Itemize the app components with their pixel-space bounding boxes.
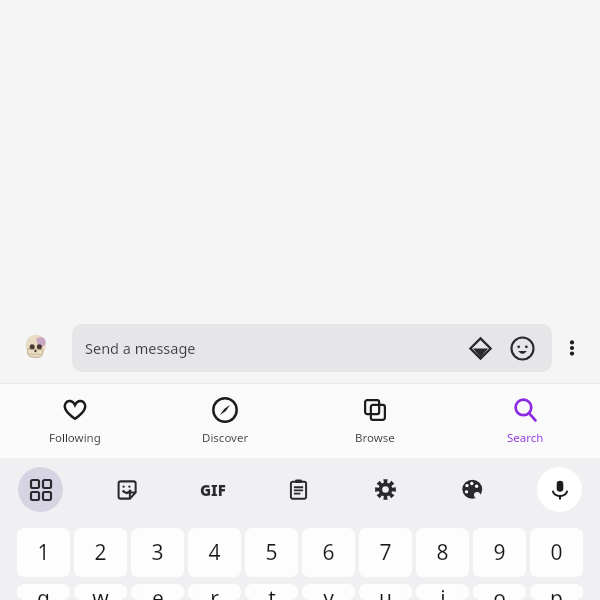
button[interactable]: o bbox=[473, 584, 526, 600]
button[interactable]: 8 bbox=[416, 528, 469, 577]
button[interactable]: 5 bbox=[245, 528, 298, 577]
button[interactable]: Stickers bbox=[104, 467, 149, 512]
staticText: 6 bbox=[322, 538, 335, 567]
staticText: e bbox=[152, 584, 164, 600]
staticText: p bbox=[550, 584, 563, 600]
button[interactable]: 7 bbox=[359, 528, 412, 577]
staticText: r bbox=[210, 584, 219, 600]
button[interactable]: Themes bbox=[450, 467, 495, 512]
button[interactable]: t bbox=[245, 584, 298, 600]
button[interactable]: w bbox=[74, 584, 127, 600]
staticText: 0 bbox=[550, 538, 563, 567]
staticText: 3 bbox=[151, 538, 164, 567]
staticText: 8 bbox=[436, 538, 449, 567]
staticText: GIF bbox=[200, 480, 226, 500]
staticText: Browse bbox=[355, 430, 395, 446]
staticText: u bbox=[379, 584, 392, 600]
staticText: 1 bbox=[37, 538, 50, 567]
button[interactable]: u bbox=[359, 584, 412, 600]
button[interactable]: Search bbox=[450, 384, 600, 458]
button[interactable]: Clipboard bbox=[276, 467, 321, 512]
button[interactable]: e bbox=[131, 584, 184, 600]
button[interactable]: 2 bbox=[74, 528, 127, 577]
staticText: Discover bbox=[202, 430, 249, 446]
button[interactable]: Send a message bbox=[72, 324, 552, 372]
button[interactable]: Settings bbox=[363, 467, 408, 512]
staticText: 9 bbox=[493, 538, 506, 567]
staticText: Send a message bbox=[85, 338, 196, 358]
staticText: 4 bbox=[208, 538, 221, 567]
button[interactable]: Voice input bbox=[537, 467, 582, 512]
staticText: i bbox=[440, 584, 446, 600]
staticText: Search bbox=[507, 430, 544, 446]
button[interactable]: i bbox=[416, 584, 469, 600]
staticText: t bbox=[268, 584, 276, 600]
button[interactable]: Following bbox=[0, 384, 150, 458]
staticText: 5 bbox=[265, 538, 278, 567]
button[interactable]: Gems bbox=[462, 330, 498, 366]
button[interactable]: 4 bbox=[188, 528, 241, 577]
staticText: w bbox=[92, 584, 109, 600]
button[interactable]: 9 bbox=[473, 528, 526, 577]
button[interactable]: Apps bbox=[18, 467, 63, 512]
staticText: y bbox=[323, 584, 334, 600]
button[interactable]: More options bbox=[552, 312, 592, 383]
staticText: 2 bbox=[94, 538, 107, 567]
staticText: 7 bbox=[379, 538, 392, 567]
button[interactable]: GIF bbox=[190, 467, 235, 512]
button[interactable]: 6 bbox=[302, 528, 355, 577]
button[interactable]: 0 bbox=[530, 528, 583, 577]
button[interactable]: 3 bbox=[131, 528, 184, 577]
button[interactable]: Discover bbox=[150, 384, 300, 458]
button[interactable]: Emoji bbox=[504, 330, 540, 366]
staticText: o bbox=[493, 584, 506, 600]
button[interactable]: Profile avatar bbox=[17, 328, 57, 368]
button[interactable]: r bbox=[188, 584, 241, 600]
staticText: Following bbox=[49, 430, 101, 446]
button[interactable]: y bbox=[302, 584, 355, 600]
staticText: q bbox=[37, 584, 50, 600]
button[interactable]: q bbox=[17, 584, 70, 600]
button[interactable]: Browse bbox=[300, 384, 450, 458]
button[interactable]: 1 bbox=[17, 528, 70, 577]
button[interactable]: p bbox=[530, 584, 583, 600]
